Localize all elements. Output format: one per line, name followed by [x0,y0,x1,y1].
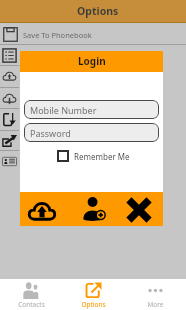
staticText: Login [78,54,106,68]
staticText: Remember Me [74,151,130,162]
staticText: Mobile Number [30,104,97,116]
button[interactable]: Save To Phonebook [0,23,186,44]
button[interactable]: Mobile Number [24,100,159,119]
button[interactable]: Options [62,279,124,310]
button[interactable]: Close [123,194,155,226]
button[interactable]: Download from cloud [0,88,19,108]
button[interactable]: Remember Me [57,150,130,162]
button[interactable]: More [124,279,186,310]
button[interactable]: List [0,45,19,65]
staticText: Options [81,300,106,309]
staticText: Contacts [18,300,45,309]
button[interactable]: Add contact [79,194,109,224]
button[interactable]: Password [24,123,159,142]
staticText: More [147,300,164,309]
button[interactable]: Upload to cloud [25,194,59,228]
button[interactable]: Upload to cloud [0,66,19,87]
button[interactable]: Contact card [0,151,19,171]
button[interactable]: Contacts [0,279,62,310]
staticText: Options [77,4,119,18]
staticText: Save To Phonebook [23,30,92,40]
button[interactable]: Import to phone [0,109,19,130]
button[interactable]: Share [0,131,19,150]
staticText: Password [30,127,71,139]
